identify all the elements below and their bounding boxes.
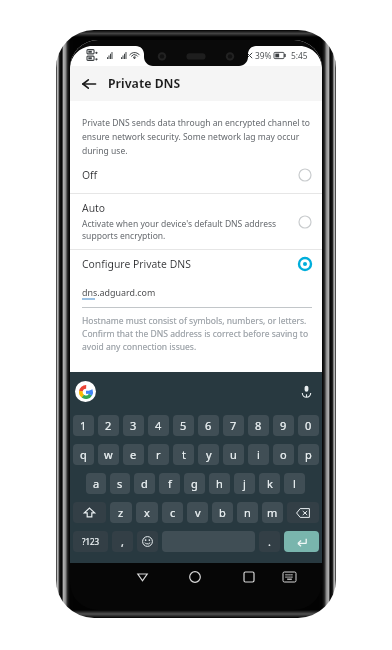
staticText: m (267, 505, 278, 520)
staticText: g (191, 476, 198, 491)
button[interactable]: q (73, 444, 94, 465)
button[interactable]: Configure Private DNS (70, 250, 322, 277)
button[interactable]: Back (70, 66, 108, 101)
staticText: y (206, 447, 212, 462)
button[interactable]: 3 (123, 415, 144, 436)
button[interactable]: Emoji (137, 531, 158, 552)
button[interactable]: g (184, 473, 205, 494)
button[interactable]: Voice input (300, 385, 313, 398)
button[interactable]: Off (70, 157, 322, 193)
button[interactable]: Shift (73, 502, 106, 523)
staticText: dns.adguard.com (82, 286, 156, 298)
staticText: 5:45 (291, 50, 308, 61)
button[interactable]: r (148, 444, 169, 465)
button[interactable]: Google Search (75, 381, 96, 402)
button[interactable]: 0 (298, 415, 319, 436)
staticText: Activate when your device's default DNS … (82, 218, 290, 242)
button[interactable]: 1 (73, 415, 94, 436)
staticText: d (141, 476, 148, 491)
staticText: h (216, 476, 223, 491)
staticText: Private DNS (108, 75, 181, 92)
staticText: Configure Private DNS (82, 257, 191, 271)
button[interactable]: t (173, 444, 194, 465)
button[interactable]: Backspace (287, 502, 319, 523)
button[interactable]: y (198, 444, 219, 465)
staticText: 5 (180, 418, 187, 433)
button[interactable]: s (110, 473, 130, 494)
staticText: x (144, 505, 150, 520)
button[interactable]: . (259, 531, 280, 552)
button[interactable]: ?123 (73, 531, 108, 552)
button[interactable]: Back (128, 563, 156, 591)
staticText: s (117, 476, 123, 491)
button[interactable]: 9 (273, 415, 294, 436)
button[interactable]: 8 (248, 415, 269, 436)
button[interactable]: c (162, 502, 183, 523)
button[interactable]: f (159, 473, 180, 494)
button[interactable]: m (262, 502, 283, 523)
staticText: a (93, 476, 100, 491)
staticText: j (243, 476, 246, 491)
button[interactable]: v (187, 502, 208, 523)
button[interactable]: Recents (235, 563, 263, 591)
staticText: , (121, 534, 124, 549)
staticText: e (130, 447, 137, 462)
button[interactable]: j (234, 473, 255, 494)
button[interactable]: w (98, 444, 119, 465)
staticText: f (168, 476, 172, 491)
staticText: Off (82, 168, 98, 182)
button[interactable]: , (112, 531, 133, 552)
button[interactable]: 2 (98, 415, 119, 436)
staticText: 8 (255, 418, 262, 433)
staticText: r (156, 447, 161, 462)
staticText: k (267, 476, 273, 491)
button[interactable]: Enter (284, 531, 319, 552)
staticText: z (118, 505, 124, 520)
staticText: w (104, 447, 113, 462)
button[interactable]: n (237, 502, 258, 523)
button[interactable]: 5 (173, 415, 194, 436)
staticText: l (293, 476, 296, 491)
staticText: p (305, 447, 312, 462)
staticText: Auto (82, 201, 106, 215)
button[interactable]: o (273, 444, 294, 465)
button[interactable]: p (298, 444, 319, 465)
button[interactable]: k (259, 473, 280, 494)
staticText: v (195, 505, 201, 520)
button[interactable]: i (248, 444, 269, 465)
staticText: ?123 (82, 536, 100, 547)
staticText: 3 (130, 418, 137, 433)
button[interactable]: z (110, 502, 132, 523)
staticText: 2 (105, 418, 112, 433)
button[interactable]: Auto (70, 194, 322, 249)
staticText: i (257, 447, 260, 462)
staticText: Hostname must consist of symbols, number… (82, 315, 312, 353)
staticText: 0 (305, 418, 312, 433)
staticText: q (80, 447, 87, 462)
staticText: 1 (80, 418, 87, 433)
staticText: b (219, 505, 226, 520)
staticText: Private DNS sends data through an encryp… (82, 117, 313, 157)
button[interactable]: a (86, 473, 106, 494)
staticText: 6 (205, 418, 212, 433)
button[interactable]: x (136, 502, 158, 523)
staticText: o (280, 447, 287, 462)
staticText: n (244, 505, 251, 520)
staticText: . (268, 534, 271, 549)
staticText: 39% (255, 50, 272, 61)
staticText: u (230, 447, 237, 462)
button[interactable]: 6 (198, 415, 219, 436)
button[interactable]: u (223, 444, 244, 465)
button[interactable]: Home (181, 563, 209, 591)
staticText: 4 (155, 418, 162, 433)
button[interactable]: d (134, 473, 155, 494)
button[interactable]: h (209, 473, 230, 494)
button[interactable]: l (284, 473, 305, 494)
staticText: t (182, 447, 186, 462)
button[interactable]: Hide keyboard (275, 563, 303, 591)
button[interactable]: 4 (148, 415, 169, 436)
button[interactable]: e (123, 444, 144, 465)
button[interactable]: b (212, 502, 233, 523)
button[interactable]: 7 (223, 415, 244, 436)
